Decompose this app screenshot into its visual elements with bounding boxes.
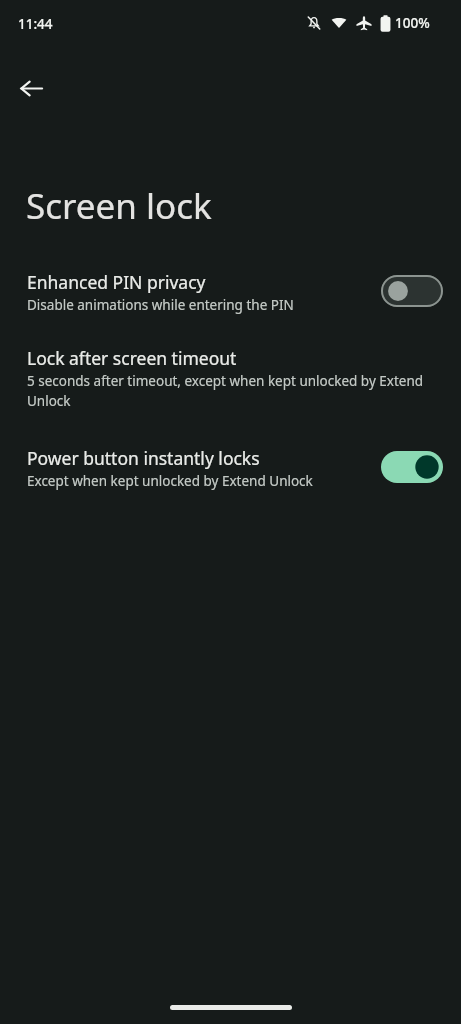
staticText: Disable animations while entering the PI…	[27, 296, 294, 314]
staticText: Screen lock	[26, 182, 212, 230]
staticText: 5 seconds after timeout, except when kep…	[27, 372, 434, 410]
button[interactable]: Back	[8, 65, 54, 111]
staticText: 11:44	[18, 15, 53, 33]
button[interactable]: Enhanced PIN privacy	[0, 262, 461, 338]
staticText: Lock after screen timeout	[27, 346, 237, 370]
button[interactable]: Power button instantly locks	[0, 438, 461, 514]
staticText: 100%	[395, 14, 430, 32]
button[interactable]: Lock after screen timeout	[0, 338, 461, 438]
staticText: Power button instantly locks	[27, 446, 260, 470]
button[interactable]: Toggle off	[380, 274, 444, 308]
staticText: Except when kept unlocked by Extend Unlo…	[27, 472, 313, 490]
button[interactable]: Toggle on	[380, 450, 444, 484]
staticText: Enhanced PIN privacy	[27, 270, 206, 294]
